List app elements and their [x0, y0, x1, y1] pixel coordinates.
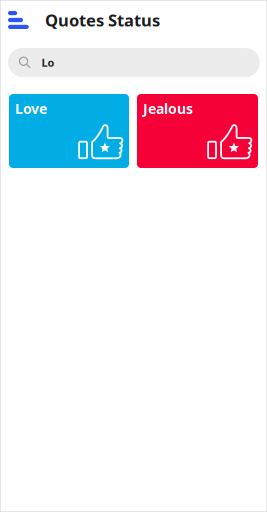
staticText: Jealous — [143, 99, 193, 118]
staticText: Lo — [42, 55, 55, 70]
button[interactable]: Menu — [0, 3, 45, 37]
button[interactable]: Jealous — [137, 94, 258, 168]
staticText: Love — [15, 99, 47, 118]
button[interactable]: Love — [9, 94, 129, 168]
staticText: Quotes Status — [45, 9, 160, 31]
button[interactable]: Lo — [8, 48, 260, 77]
